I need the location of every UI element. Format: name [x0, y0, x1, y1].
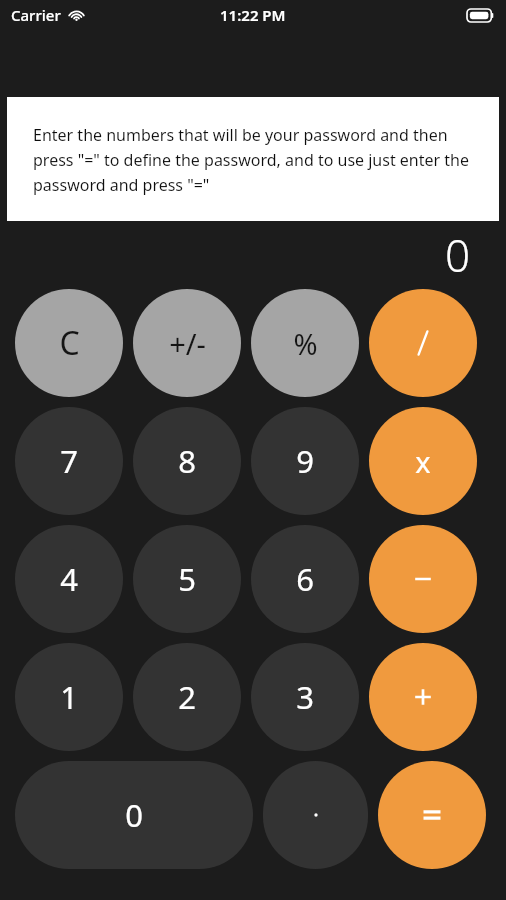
button[interactable]: 2: [133, 643, 241, 751]
staticText: Enter the numbers that will be your pass…: [33, 124, 481, 195]
staticText: 3: [296, 676, 314, 718]
button[interactable]: 8: [133, 407, 241, 515]
button[interactable]: 5: [133, 525, 241, 633]
button[interactable]: Minus: [369, 525, 477, 633]
button[interactable]: 7: [15, 407, 123, 515]
button[interactable]: 9: [251, 407, 359, 515]
staticText: 0: [125, 794, 143, 836]
staticText: 7: [60, 440, 78, 482]
staticText: 2: [178, 676, 196, 718]
staticText: x: [415, 442, 431, 481]
button[interactable]: Decimal point: [263, 761, 368, 869]
staticText: %: [293, 324, 318, 363]
button[interactable]: 6: [251, 525, 359, 633]
button[interactable]: Divide: [369, 289, 477, 397]
staticText: 1: [60, 676, 78, 718]
staticText: 11:22 PM: [220, 5, 286, 25]
button[interactable]: x: [369, 407, 477, 515]
button[interactable]: %: [251, 289, 359, 397]
button[interactable]: +/-: [133, 289, 241, 397]
staticText: 6: [296, 558, 314, 600]
staticText: 0: [445, 225, 471, 285]
button[interactable]: 4: [15, 525, 123, 633]
button[interactable]: Equals: [378, 761, 486, 869]
staticText: +/-: [169, 324, 206, 363]
button[interactable]: 0: [15, 761, 253, 869]
button[interactable]: 1: [15, 643, 123, 751]
staticText: 9: [296, 440, 314, 482]
staticText: 4: [60, 558, 78, 600]
button[interactable]: Plus: [369, 643, 477, 751]
staticText: Carrier: [11, 5, 61, 25]
button[interactable]: 3: [251, 643, 359, 751]
staticText: C: [59, 321, 80, 365]
button[interactable]: C: [15, 289, 123, 397]
staticText: 8: [178, 440, 196, 482]
staticText: 5: [178, 558, 196, 600]
